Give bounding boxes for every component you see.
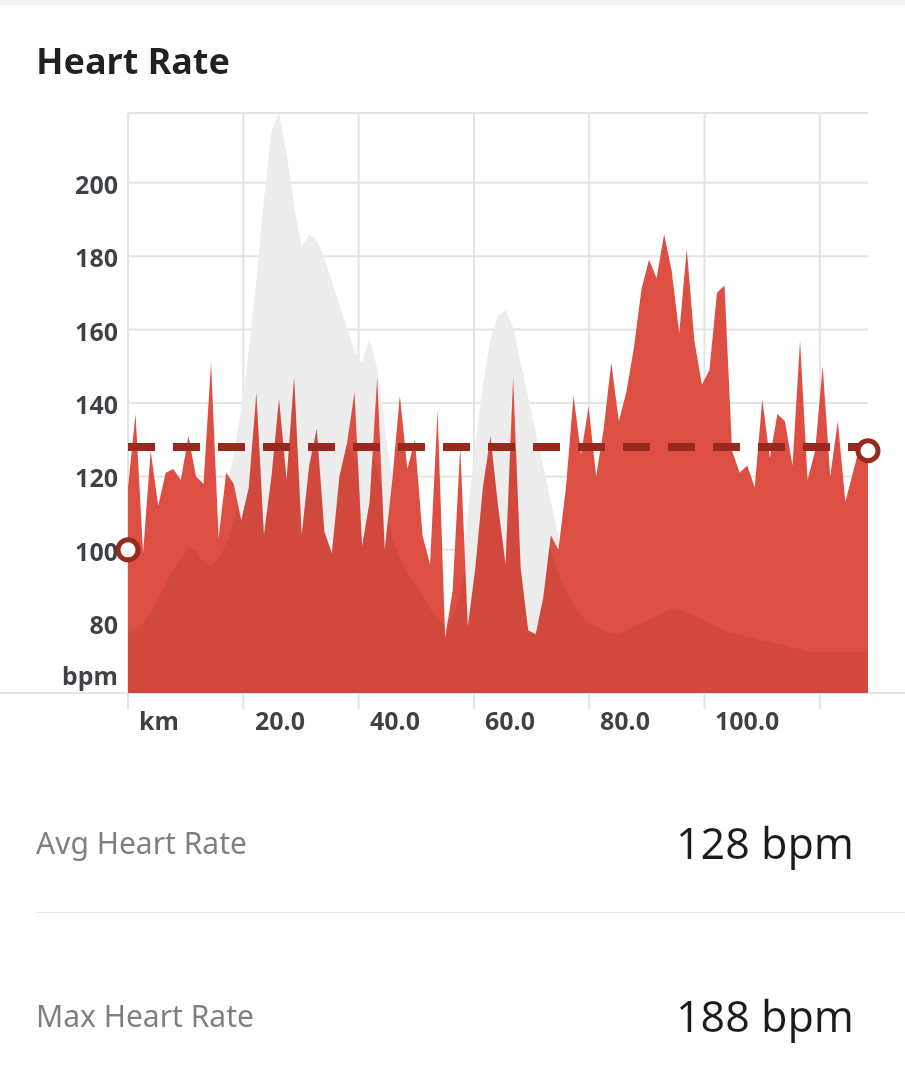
- staticText: Heart Rate: [36, 36, 230, 85]
- staticText: 180: [8, 240, 118, 274]
- staticText: 188 bpm: [676, 986, 855, 1045]
- staticText: 80.0: [600, 703, 650, 737]
- button[interactable]: Max Heart Rate: [0, 945, 905, 1080]
- staticText: km: [139, 703, 179, 737]
- button[interactable]: Avg Heart Rate: [0, 772, 905, 912]
- staticText: 140: [8, 387, 118, 421]
- staticText: 20.0: [255, 703, 305, 737]
- staticText: Max Heart Rate: [36, 995, 254, 1036]
- staticText: 120: [8, 460, 118, 494]
- staticText: bpm: [8, 658, 118, 692]
- staticText: Avg Heart Rate: [36, 822, 247, 863]
- staticText: 40.0: [370, 703, 420, 737]
- staticText: 100: [8, 534, 118, 568]
- staticText: 60.0: [485, 703, 535, 737]
- staticText: 128 bpm: [676, 813, 855, 872]
- staticText: 80: [8, 607, 118, 641]
- staticText: 200: [8, 167, 118, 201]
- staticText: 100.0: [715, 703, 780, 737]
- staticText: 160: [8, 314, 118, 348]
